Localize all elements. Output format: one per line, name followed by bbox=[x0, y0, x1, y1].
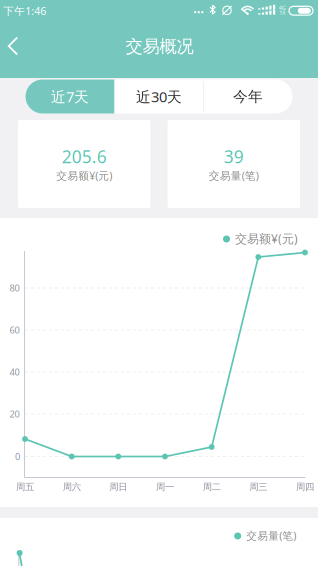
staticText: 40 bbox=[9, 366, 19, 378]
staticText: 0 bbox=[15, 450, 20, 463]
staticText: 39 bbox=[224, 145, 244, 168]
staticText: 周一 bbox=[156, 481, 174, 493]
staticText: 今年 bbox=[233, 87, 263, 105]
button[interactable]: 今年 bbox=[204, 79, 292, 113]
staticText: 交易量(笔) bbox=[246, 528, 296, 543]
staticText: 4G bbox=[279, 4, 286, 11]
staticText: 205.6 bbox=[62, 145, 107, 168]
staticText: 周三 bbox=[249, 481, 267, 493]
staticText: 周四 bbox=[296, 481, 314, 493]
staticText: 周二 bbox=[203, 481, 221, 493]
button[interactable]: 近30天 bbox=[115, 79, 203, 113]
staticText: 下午1:46 bbox=[3, 4, 46, 18]
staticText: 交易概况 bbox=[125, 36, 193, 57]
button[interactable]: Back bbox=[4, 35, 28, 57]
staticText: 80 bbox=[9, 282, 19, 294]
staticText: 周五 bbox=[16, 481, 34, 493]
staticText: 1X bbox=[279, 9, 285, 16]
staticText: 交易量(笔) bbox=[209, 168, 259, 183]
staticText: 20 bbox=[9, 408, 19, 420]
staticText: 近30天 bbox=[136, 87, 182, 106]
button[interactable]: 近7天 bbox=[26, 79, 114, 113]
staticText: 60 bbox=[9, 324, 19, 336]
staticText: 交易额¥(元) bbox=[235, 230, 298, 246]
staticText: 交易额¥(元) bbox=[56, 168, 112, 183]
staticText: 周日 bbox=[109, 481, 127, 493]
staticText: 近7天 bbox=[51, 87, 89, 106]
staticText: 周六 bbox=[63, 481, 81, 493]
